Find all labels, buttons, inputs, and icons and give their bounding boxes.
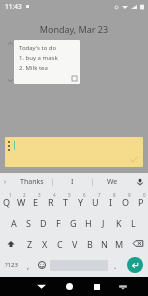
staticText: R <box>48 196 54 208</box>
staticText: N <box>101 238 108 250</box>
button[interactable]: Home <box>55 277 83 296</box>
button[interactable]: More options <box>5 137 143 167</box>
button[interactable]: T <box>58 191 73 212</box>
button[interactable]: Switch keyboard <box>111 277 134 296</box>
staticText: S <box>26 217 31 229</box>
staticText: Y <box>78 196 84 208</box>
button[interactable]: X <box>37 233 52 254</box>
button[interactable]: Scroll up <box>7 40 14 47</box>
button[interactable]: Thanks <box>12 173 52 191</box>
staticText: B <box>87 238 93 250</box>
button[interactable]: Enter <box>127 257 143 273</box>
staticText: F <box>56 217 61 229</box>
button[interactable]: L <box>126 212 141 233</box>
button[interactable]: Backspace <box>127 233 148 254</box>
button[interactable]: V <box>67 233 82 254</box>
button[interactable]: , <box>22 254 35 276</box>
staticText: A <box>11 217 17 229</box>
button[interactable]: ?123 <box>0 254 22 276</box>
staticText: 2 <box>23 192 26 198</box>
staticText: 5 <box>68 192 71 198</box>
button[interactable]: Emoji <box>35 254 49 276</box>
button[interactable]: Z <box>22 233 37 254</box>
staticText: G <box>70 217 77 229</box>
button[interactable]: Recents <box>83 277 111 296</box>
button[interactable]: G <box>66 212 81 233</box>
staticText: 0 <box>143 192 146 198</box>
button[interactable]: O <box>118 191 133 212</box>
button[interactable]: H <box>81 212 96 233</box>
button[interactable]: Voice input <box>136 178 144 186</box>
staticText: 4 <box>53 192 56 198</box>
button[interactable]: F <box>51 212 66 233</box>
staticText: H <box>85 217 92 229</box>
staticText: L <box>131 217 136 229</box>
staticText: C <box>57 238 63 250</box>
staticText: 1 <box>9 192 12 198</box>
button[interactable]: E <box>28 191 43 212</box>
button[interactable]: I <box>103 191 118 212</box>
staticText: M <box>115 238 124 250</box>
button[interactable]: U <box>88 191 103 212</box>
staticText: 7 <box>98 192 101 198</box>
button[interactable]: Hide keyboard <box>27 277 55 296</box>
button[interactable]: B <box>82 233 97 254</box>
button[interactable]: . <box>109 254 122 276</box>
staticText: Today's to do <box>19 44 57 52</box>
button[interactable]: P <box>133 191 148 212</box>
staticText: › <box>4 177 7 187</box>
staticText: 9 <box>128 192 131 198</box>
staticText: X <box>42 238 48 250</box>
button[interactable]: D <box>36 212 51 233</box>
staticText: I <box>109 196 113 208</box>
button[interactable]: We <box>93 173 132 191</box>
staticText: , <box>27 260 30 271</box>
button[interactable]: A <box>7 212 21 233</box>
staticText: ?123 <box>5 261 18 269</box>
button[interactable]: S <box>21 212 36 233</box>
staticText: . <box>114 260 117 271</box>
staticText: D <box>40 217 47 229</box>
button[interactable]: J <box>96 212 111 233</box>
button[interactable]: W <box>14 191 28 212</box>
staticText: U <box>92 196 99 208</box>
staticText: V <box>72 238 78 250</box>
staticText: 6 <box>83 192 86 198</box>
staticText: J <box>102 217 105 229</box>
staticText: 11:43 <box>5 2 22 11</box>
staticText: We <box>107 177 118 187</box>
button[interactable]: K <box>111 212 126 233</box>
button[interactable]: C <box>52 233 67 254</box>
staticText: Thanks <box>20 177 44 187</box>
staticText: Q <box>3 196 11 208</box>
staticText: O <box>122 196 130 208</box>
button[interactable]: Scroll down <box>7 77 14 84</box>
button[interactable]: I <box>53 173 92 191</box>
button[interactable]: R <box>43 191 58 212</box>
staticText: 2. Milk tea <box>19 64 48 72</box>
staticText: I <box>71 177 74 187</box>
staticText: W <box>17 196 26 208</box>
button[interactable]: M <box>112 233 127 254</box>
button[interactable]: Q <box>0 191 14 212</box>
button[interactable]: More options <box>8 141 10 151</box>
staticText: Monday, Mar 23 <box>0 23 148 35</box>
button[interactable]: Resize note <box>72 76 77 81</box>
staticText: K <box>116 217 122 229</box>
staticText: 1. buy a mask <box>19 54 58 62</box>
staticText: 8 <box>113 192 116 198</box>
button[interactable]: Shift <box>0 233 22 254</box>
button[interactable]: Today's to do <box>14 40 80 84</box>
staticText: 3 <box>38 192 41 198</box>
staticText: P <box>138 196 144 208</box>
button[interactable]: N <box>97 233 112 254</box>
button[interactable]: Y <box>73 191 88 212</box>
staticText: Z <box>27 238 33 250</box>
staticText: E <box>33 196 39 208</box>
button[interactable]: Done <box>129 155 138 164</box>
staticText: T <box>63 196 69 208</box>
